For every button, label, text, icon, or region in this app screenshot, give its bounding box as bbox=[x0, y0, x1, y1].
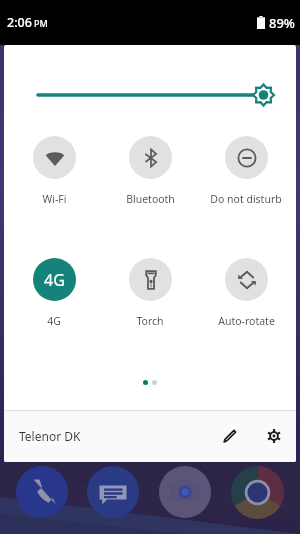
button[interactable]: Torch bbox=[104, 258, 196, 328]
button[interactable]: Wi-Fi bbox=[8, 136, 100, 206]
staticText: Telenor DK bbox=[19, 428, 81, 444]
button[interactable]: Bluetooth bbox=[104, 136, 196, 206]
staticText: 4G bbox=[47, 314, 61, 328]
button[interactable]: Edit bbox=[214, 420, 246, 452]
staticText: 4G bbox=[44, 269, 65, 291]
button[interactable]: Camera bbox=[159, 466, 211, 518]
button[interactable]: 4G bbox=[8, 258, 100, 328]
staticText: PM bbox=[34, 17, 48, 29]
button[interactable]: Auto-rotate bbox=[200, 258, 292, 328]
staticText: Do not disturb bbox=[210, 192, 282, 206]
staticText: Bluetooth bbox=[126, 192, 175, 206]
staticText: Wi-Fi bbox=[42, 192, 67, 206]
staticText: 89% bbox=[269, 14, 295, 32]
button[interactable]: Do not disturb bbox=[200, 136, 292, 206]
staticText: Auto-rotate bbox=[218, 314, 275, 328]
button[interactable]: Phone bbox=[16, 466, 68, 518]
button[interactable]: Messages bbox=[87, 466, 139, 518]
button[interactable]: Chrome bbox=[231, 466, 284, 519]
button[interactable]: Settings bbox=[258, 420, 290, 452]
staticText: Torch bbox=[136, 314, 164, 328]
staticText: 2:06 bbox=[7, 14, 32, 31]
